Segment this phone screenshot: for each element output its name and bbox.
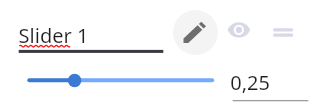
button[interactable]: Reorder [269,20,297,45]
button[interactable]: Edit slider [173,10,218,55]
button[interactable]: Toggle visibility [225,16,253,44]
